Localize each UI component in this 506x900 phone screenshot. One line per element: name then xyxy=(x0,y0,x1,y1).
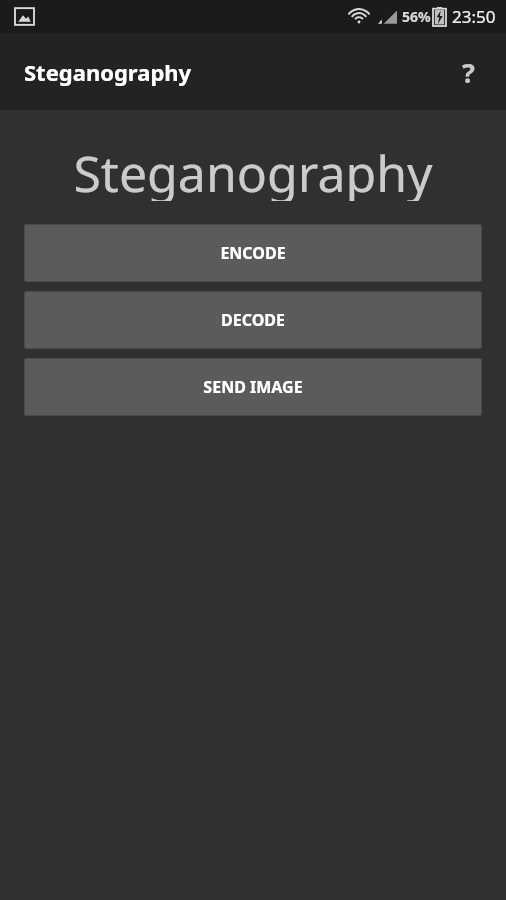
staticText: SEND IMAGE xyxy=(203,376,303,398)
staticText: 56% xyxy=(402,7,431,26)
staticText: DECODE xyxy=(221,309,285,331)
button[interactable]: Help xyxy=(444,48,492,96)
staticText: Steganography xyxy=(24,57,192,87)
button[interactable]: ENCODE xyxy=(24,224,482,282)
staticText: ENCODE xyxy=(220,242,286,264)
staticText: 23:50 xyxy=(452,5,496,28)
staticText: Steganography xyxy=(73,139,433,201)
button[interactable]: DECODE xyxy=(24,291,482,349)
button[interactable]: SEND IMAGE xyxy=(24,358,482,416)
staticText: ? xyxy=(462,54,475,91)
